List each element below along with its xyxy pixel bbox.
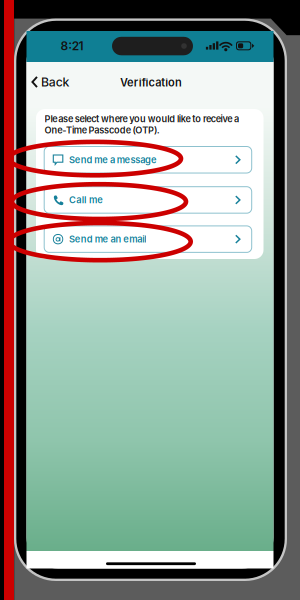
button[interactable]: Call me: [44, 187, 252, 213]
staticText: Call me: [69, 194, 103, 206]
staticText: Verification: [120, 76, 182, 89]
button[interactable]: Send me a message: [44, 146, 252, 173]
staticText: Please select where you would like to re…: [45, 113, 239, 136]
button[interactable]: Back: [27, 68, 74, 96]
staticText: Send me a message: [69, 154, 157, 165]
staticText: Send me an email: [69, 233, 146, 245]
button[interactable]: Send me an email: [44, 226, 252, 252]
staticText: 8:21: [60, 39, 83, 53]
staticText: Back: [41, 75, 70, 89]
